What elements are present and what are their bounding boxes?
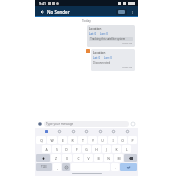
button[interactable]: More options [129, 9, 135, 15]
button[interactable]: Send [130, 121, 136, 127]
button[interactable]: R [68, 136, 77, 144]
staticText: Lat: 0 [93, 56, 101, 60]
staticText: No Sender [47, 9, 70, 15]
button[interactable]: M [114, 154, 123, 162]
button[interactable]: Enter [120, 163, 137, 171]
staticText: R [71, 138, 74, 143]
button[interactable]: B [94, 154, 103, 162]
button[interactable]: Keyboard [44, 129, 49, 134]
button[interactable]: F [72, 145, 81, 153]
button[interactable]: X [62, 154, 72, 162]
button[interactable]: H [92, 145, 101, 153]
staticText: L [126, 147, 128, 152]
button[interactable]: J [102, 145, 111, 153]
button[interactable]: K [112, 145, 121, 153]
button[interactable]: More [125, 129, 130, 134]
staticText: F [76, 147, 78, 152]
staticText: O [121, 138, 124, 143]
staticText: Lon: 0 [100, 32, 108, 36]
button[interactable]: Emoji [98, 129, 103, 134]
button[interactable]: Emoji [62, 163, 70, 171]
button[interactable]: T [78, 136, 87, 144]
button[interactable]: L [122, 145, 131, 153]
button[interactable]: D [62, 145, 71, 153]
staticText: ?123 [41, 165, 47, 169]
button[interactable]: Mic [111, 129, 116, 134]
staticText: X [66, 156, 68, 161]
button[interactable]: Numbers [36, 163, 52, 171]
staticText: C [77, 156, 80, 161]
button[interactable]: W [47, 136, 57, 144]
button[interactable]: Shift [36, 154, 50, 162]
staticText: D [65, 147, 68, 152]
staticText: Q [40, 138, 43, 143]
staticText: Location [93, 51, 106, 55]
button[interactable]: Call [116, 9, 127, 15]
button[interactable]: P [128, 136, 137, 144]
button[interactable]: V [84, 154, 93, 162]
staticText: Lon: 0 [104, 56, 112, 60]
button[interactable]: Add attachment [37, 121, 43, 127]
staticText: B [97, 156, 100, 161]
button[interactable]: . [111, 163, 119, 171]
staticText: . [115, 165, 116, 170]
staticText: Lat: 0 [89, 32, 97, 36]
staticText: A [45, 147, 48, 152]
button[interactable]: I [108, 136, 117, 144]
button[interactable]: E [58, 136, 67, 144]
button[interactable]: GIF [57, 129, 62, 134]
staticText: , [57, 165, 58, 170]
staticText: E [62, 138, 64, 143]
button[interactable]: G [82, 145, 91, 153]
staticText: S [56, 147, 58, 152]
button[interactable]: N [104, 154, 113, 162]
button[interactable]: Q [36, 136, 46, 144]
staticText: Disconnected [93, 61, 111, 65]
button[interactable]: O [118, 136, 127, 144]
button[interactable]: Back [38, 8, 45, 15]
staticText: Tracking this satellite system [89, 37, 126, 41]
staticText: N [107, 156, 110, 161]
staticText: M [117, 156, 121, 161]
button[interactable]: Location [87, 25, 135, 47]
button[interactable]: Y [88, 136, 97, 144]
staticText: 10:24 AM [122, 42, 133, 45]
button[interactable]: S [52, 145, 61, 153]
staticText: Location [89, 27, 102, 31]
staticText: H [95, 147, 98, 152]
button[interactable]: C [73, 154, 83, 162]
staticText: Type your message [46, 122, 74, 126]
button[interactable]: , [53, 163, 61, 171]
button[interactable]: U [98, 136, 107, 144]
button[interactable]: Sticker [71, 129, 76, 134]
staticText: J [106, 147, 107, 152]
button[interactable]: Location [91, 49, 135, 71]
staticText: 9:41 [39, 1, 46, 6]
staticText: Today [82, 19, 91, 23]
staticText: P [131, 138, 134, 143]
button[interactable]: Z [51, 154, 61, 162]
staticText: I [112, 138, 114, 143]
button[interactable]: Type your message [44, 121, 129, 127]
button[interactable]: Settings [84, 129, 89, 134]
staticText: Y [92, 138, 94, 143]
staticText: 10:25 AM [122, 66, 133, 69]
button[interactable]: A [42, 145, 51, 153]
staticText: V [87, 156, 90, 161]
button[interactable]: Backspace [124, 154, 137, 162]
staticText: W [50, 138, 54, 143]
staticText: Z [55, 156, 57, 161]
staticText: U [101, 138, 104, 143]
staticText: T [82, 138, 84, 143]
staticText: K [115, 147, 118, 152]
staticText: G [85, 147, 88, 152]
